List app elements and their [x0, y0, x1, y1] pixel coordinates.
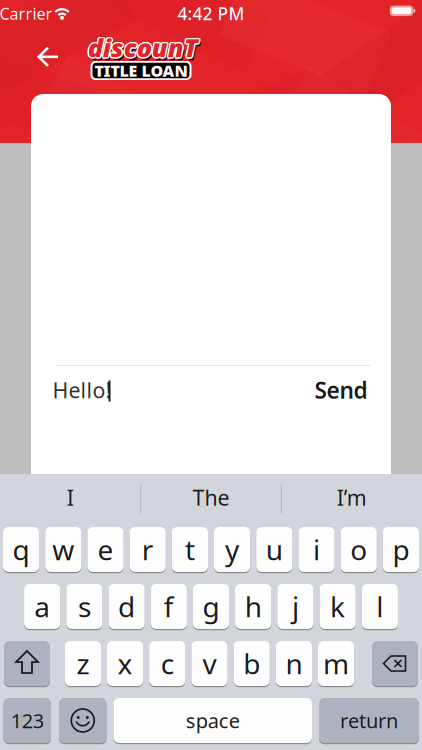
button[interactable]: u [256, 527, 292, 572]
staticText: v [202, 645, 216, 682]
staticText: I [67, 483, 74, 512]
staticText: d [118, 588, 135, 625]
button[interactable]: v [191, 641, 228, 686]
staticText: s [78, 588, 91, 625]
staticText: u [266, 531, 283, 568]
button[interactable]: i [298, 527, 335, 572]
staticText: 123 [11, 707, 44, 734]
button[interactable]: n [276, 641, 312, 686]
staticText: discounT [87, 30, 197, 63]
button[interactable]: Delete [372, 641, 418, 686]
button[interactable]: y [214, 527, 250, 572]
button[interactable]: x [107, 641, 143, 686]
button[interactable]: o [341, 527, 377, 572]
button[interactable]: z [65, 641, 101, 686]
button[interactable]: r [130, 527, 166, 572]
button[interactable]: The [146, 475, 276, 520]
staticText: o [350, 531, 367, 568]
staticText: g [202, 588, 219, 625]
staticText: 4:42 PM [177, 2, 244, 25]
button[interactable]: w [45, 527, 81, 572]
button[interactable]: h [235, 584, 271, 629]
staticText: discounT [89, 32, 199, 65]
staticText: i [313, 531, 320, 568]
staticText: Hello! [52, 376, 111, 404]
staticText: t [185, 531, 195, 568]
staticText: discounT [89, 30, 199, 63]
staticText: q [13, 531, 30, 568]
button[interactable]: d [108, 584, 145, 629]
staticText: a [34, 588, 50, 625]
staticText: l [376, 588, 383, 625]
staticText: h [245, 588, 262, 625]
button[interactable]: Emoji [59, 698, 106, 743]
button[interactable]: k [319, 584, 356, 629]
staticText: e [97, 531, 113, 568]
staticText: j [292, 588, 299, 625]
button[interactable]: I [5, 475, 135, 520]
button[interactable]: f [151, 584, 187, 629]
staticText: w [52, 531, 74, 568]
button[interactable]: return [319, 698, 419, 743]
staticText: f [164, 588, 174, 625]
staticText: TITLE LOAN [94, 60, 187, 81]
staticText: space [186, 707, 240, 734]
button[interactable]: g [193, 584, 229, 629]
staticText: Carrier [0, 3, 52, 24]
button[interactable]: e [87, 527, 124, 572]
staticText: discounT [89, 31, 199, 64]
staticText: discounT [88, 29, 198, 63]
button[interactable]: s [66, 584, 102, 629]
button[interactable]: q [3, 527, 39, 572]
staticText: y [225, 531, 239, 568]
staticText: discounT [87, 32, 197, 65]
staticText: k [330, 588, 345, 625]
button[interactable]: l [362, 584, 398, 629]
button[interactable]: Back [37, 47, 59, 67]
button[interactable]: I’m [287, 475, 417, 520]
button[interactable]: b [234, 641, 270, 686]
staticText: x [118, 645, 133, 682]
staticText: discounT [88, 31, 198, 64]
button[interactable]: a [24, 584, 60, 629]
staticText: Send [314, 375, 367, 405]
button[interactable]: c [149, 641, 185, 686]
staticText: n [285, 645, 302, 682]
staticText: p [392, 531, 409, 568]
staticText: discounT [89, 34, 199, 67]
staticText: The [192, 483, 229, 512]
button[interactable]: Shift [4, 641, 50, 686]
staticText: z [76, 645, 89, 682]
staticText: m [323, 645, 349, 682]
button[interactable]: p [383, 527, 419, 572]
staticText: discounT [88, 32, 198, 66]
button[interactable]: t [172, 527, 208, 572]
staticText: c [161, 645, 174, 682]
button[interactable]: 123 [3, 698, 51, 743]
staticText: I’m [337, 483, 367, 512]
staticText: b [243, 645, 260, 682]
button[interactable]: Send [314, 375, 367, 405]
button[interactable]: m [318, 641, 354, 686]
staticText: discounT [86, 31, 196, 64]
staticText: return [340, 707, 398, 734]
button[interactable]: space [113, 698, 312, 743]
button[interactable]: j [277, 584, 313, 629]
staticText: r [142, 531, 154, 568]
